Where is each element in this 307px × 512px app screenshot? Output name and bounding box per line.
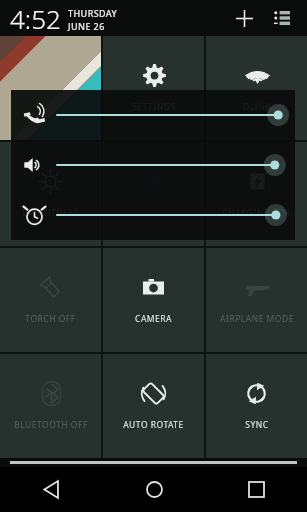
button[interactable]: Quick settings [265, 1, 299, 35]
staticText: JUNE 26 [68, 20, 105, 32]
button[interactable]: SETTINGS [103, 36, 204, 140]
button[interactable]: AIRPLANE MODE [206, 248, 307, 352]
button[interactable] [11, 190, 295, 240]
button[interactable]: BLUETOOTH OFF [0, 354, 101, 458]
staticText: CAMERA [135, 313, 172, 325]
button[interactable]: Back [0, 467, 103, 512]
staticText: CHARGING 27% [222, 207, 292, 219]
staticText: BRIGHTNESS [22, 207, 79, 219]
staticText: TORCH OFF [25, 313, 76, 325]
button[interactable]: AUTO ROTATE [103, 354, 204, 458]
button[interactable]: BATTERY SAVING [103, 142, 204, 246]
button[interactable] [0, 36, 101, 140]
button[interactable]: DLINK [206, 36, 307, 140]
button[interactable]: Recents [205, 467, 307, 512]
button[interactable]: Add user [227, 1, 261, 35]
button[interactable] [11, 90, 295, 140]
button[interactable]: CHARGING 27% [206, 142, 307, 246]
button[interactable]: SYNC [206, 354, 307, 458]
staticText: SETTINGS [132, 101, 176, 113]
button[interactable]: BRIGHTNESS [0, 142, 101, 246]
button[interactable] [11, 140, 295, 190]
button[interactable]: TORCH OFF [0, 248, 101, 352]
staticText: SYNC [245, 419, 269, 431]
staticText: BATTERY SAVING [116, 207, 191, 219]
staticText: DLINK [243, 101, 271, 113]
staticText: 4:52 [10, 1, 61, 36]
staticText: BLUETOOTH OFF [14, 419, 88, 431]
button[interactable]: CAMERA [103, 248, 204, 352]
staticText: AIRPLANE MODE [220, 313, 294, 325]
staticText: THURSDAY [68, 7, 118, 19]
staticText: AUTO ROTATE [123, 419, 184, 431]
button[interactable]: Home [103, 467, 205, 512]
